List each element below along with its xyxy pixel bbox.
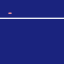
button[interactable]: Add (0, 0, 64, 64)
